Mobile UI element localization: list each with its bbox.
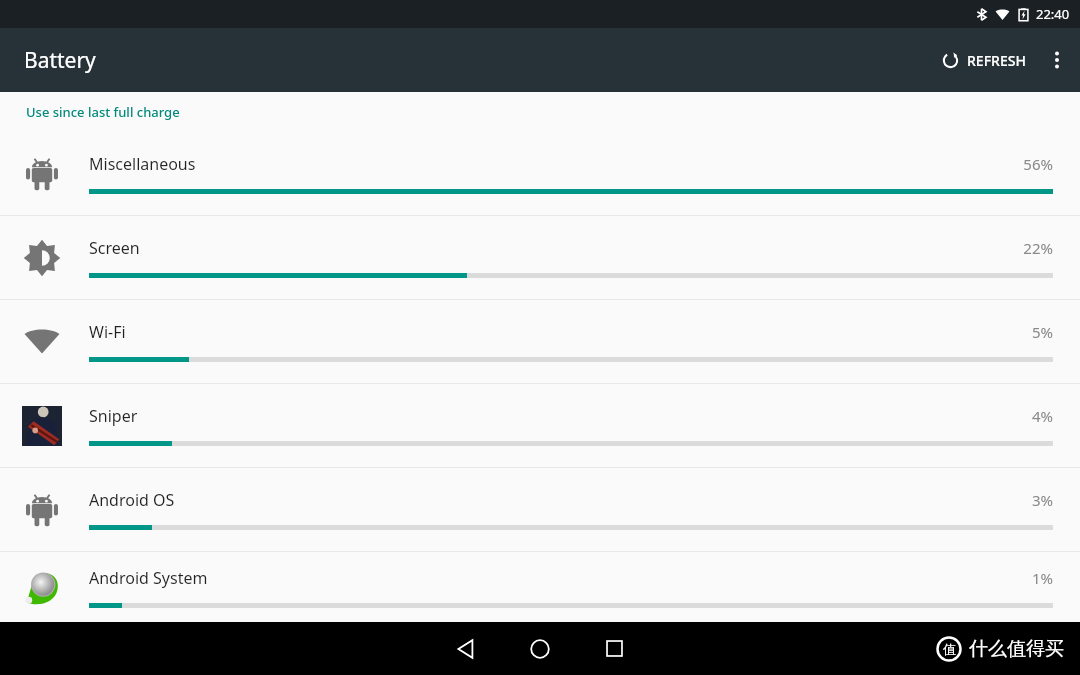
staticText: 1% [1031,568,1053,588]
staticText: Miscellaneous [89,153,196,175]
staticText: 什么值得买 [969,637,1064,661]
button[interactable]: Sniper [0,384,1080,467]
button[interactable]: Screen [0,216,1080,299]
staticText: Android OS [89,489,175,511]
button[interactable]: Back [438,622,494,675]
staticText: 22% [1023,238,1053,258]
staticText: Sniper [89,405,138,427]
button[interactable]: Android OS [0,468,1080,551]
staticText: Battery [24,46,96,75]
staticText: 56% [1023,154,1053,174]
staticText: Android System [89,567,208,589]
staticText: Use since last full charge [26,103,180,121]
staticText: 22:40 [1036,5,1070,23]
button[interactable]: REFRESH [933,41,1034,80]
staticText: Wi-Fi [89,321,126,343]
button[interactable]: Home [512,622,568,675]
staticText: Screen [89,237,140,259]
staticText: 5% [1031,322,1053,342]
staticText: REFRESH [967,51,1026,70]
button[interactable]: Miscellaneous [0,132,1080,215]
button[interactable]: Wi-Fi [0,300,1080,383]
staticText: 3% [1031,490,1053,510]
button[interactable]: Android System [0,552,1080,622]
staticText: 4% [1031,406,1053,426]
button[interactable]: More options [1034,37,1080,83]
staticText: 值 [943,641,956,657]
button[interactable]: Recent apps [586,622,642,675]
